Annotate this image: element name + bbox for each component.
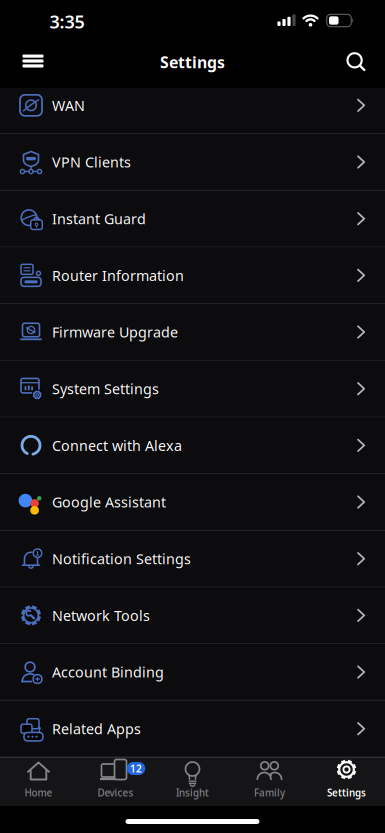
button[interactable]: Home	[0, 758, 76, 806]
staticText: Router Information	[52, 266, 184, 285]
staticText: Devices	[97, 786, 133, 799]
staticText: Network Tools	[52, 606, 150, 625]
staticText: System Settings	[52, 379, 159, 398]
staticText: WAN	[52, 96, 85, 115]
staticText: Account Binding	[52, 662, 164, 682]
button[interactable]: Router Information	[0, 247, 385, 304]
button[interactable]: Settings	[308, 758, 384, 806]
staticText: Insight	[176, 786, 209, 799]
button[interactable]: Search	[335, 40, 379, 84]
button[interactable]: Related Apps	[0, 701, 385, 758]
staticText: Notification Settings	[52, 549, 191, 568]
button[interactable]: Instant Guard	[0, 191, 385, 247]
staticText: Family	[254, 786, 285, 799]
staticText: Settings	[327, 786, 366, 799]
button[interactable]: Family	[231, 758, 307, 806]
staticText: 12	[130, 762, 142, 775]
staticText: Firmware Upgrade	[52, 322, 178, 342]
staticText: Settings	[160, 51, 225, 73]
button[interactable]: Notification Settings	[0, 531, 385, 588]
button[interactable]: Account Binding	[0, 644, 385, 701]
staticText: Connect with Alexa	[52, 436, 182, 455]
button[interactable]: Insight	[154, 758, 230, 806]
button[interactable]: Google Assistant	[0, 474, 385, 531]
staticText: Related Apps	[52, 719, 141, 738]
button[interactable]: Firmware Upgrade	[0, 304, 385, 361]
button[interactable]: System Settings	[0, 361, 385, 418]
staticText: Instant Guard	[52, 209, 146, 228]
staticText: 3:35	[49, 9, 84, 34]
button[interactable]: WAN	[0, 77, 385, 134]
staticText: VPN Clients	[52, 152, 131, 172]
button[interactable]: VPN Clients	[0, 134, 385, 191]
button[interactable]: Devices	[77, 758, 153, 806]
button[interactable]: Connect with Alexa	[0, 417, 385, 474]
button[interactable]: Menu	[11, 39, 55, 83]
button[interactable]: Network Tools	[0, 587, 385, 644]
staticText: Home	[24, 786, 52, 799]
staticText: Google Assistant	[52, 492, 166, 512]
